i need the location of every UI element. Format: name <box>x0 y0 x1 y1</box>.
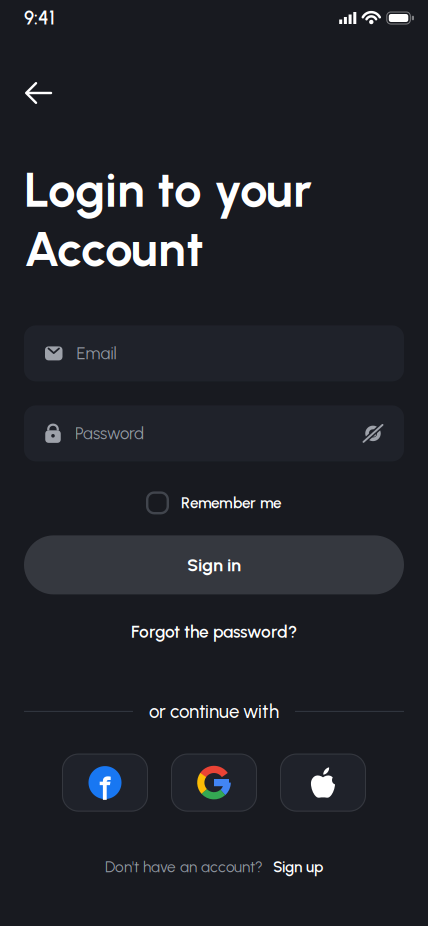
button[interactable]: Forgot the password? <box>131 621 297 642</box>
button[interactable]: Sign up <box>273 858 323 876</box>
staticText: Sign in <box>187 554 241 576</box>
staticText: Don't have an account? <box>105 858 263 876</box>
button[interactable]: Sign in <box>24 535 404 594</box>
staticText: Remember me <box>181 494 282 512</box>
button[interactable]: Email <box>24 325 404 381</box>
button[interactable] <box>171 754 257 812</box>
staticText: 9:41 <box>24 7 55 29</box>
staticText: or continue with <box>149 700 279 723</box>
button[interactable] <box>280 754 366 812</box>
button[interactable] <box>62 754 148 812</box>
staticText: Login to your Account <box>24 160 312 278</box>
button[interactable]: Password <box>24 405 404 461</box>
staticText: Sign up <box>273 858 323 876</box>
button[interactable]: Remember me <box>146 491 282 514</box>
staticText: Password <box>75 423 144 443</box>
button[interactable] <box>25 82 51 104</box>
staticText: Forgot the password? <box>131 621 297 642</box>
staticText: Email <box>76 343 116 363</box>
